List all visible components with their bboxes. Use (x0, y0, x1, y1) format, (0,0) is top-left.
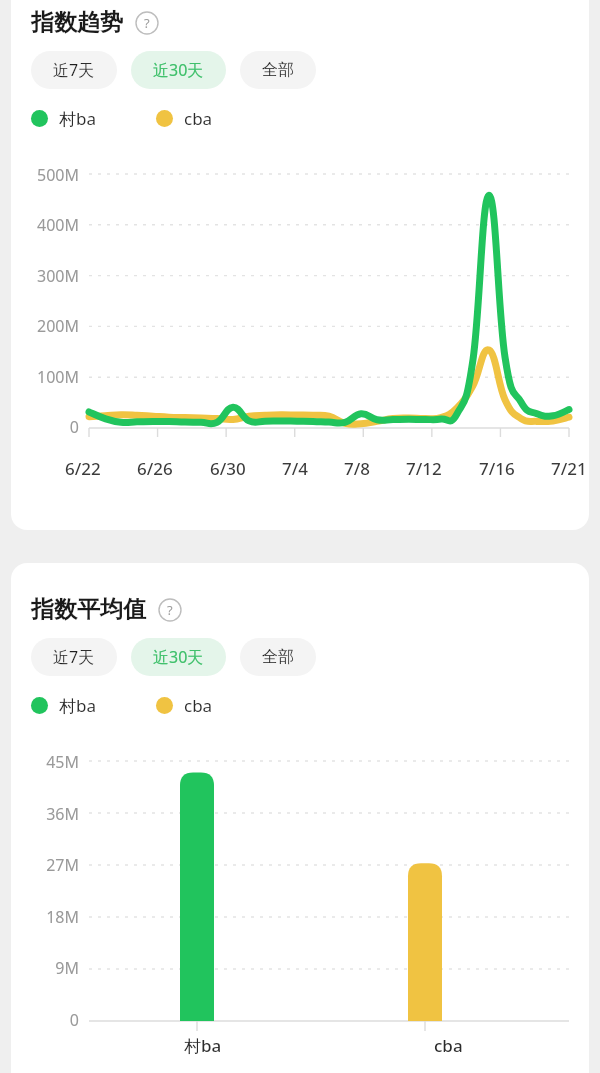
staticText: 7/8 (344, 457, 370, 480)
staticText: 村ba (184, 1034, 222, 1057)
staticText: 7/21 (551, 457, 587, 480)
button[interactable]: 全部 (240, 638, 316, 676)
staticText: 7/12 (406, 457, 442, 480)
staticText: 近7天 (53, 59, 95, 81)
button[interactable]: cba (156, 694, 213, 717)
staticText: 18M (11, 906, 79, 928)
staticText: 近30天 (153, 646, 204, 668)
button[interactable]: 近30天 (131, 51, 226, 89)
staticText: 200M (11, 315, 79, 337)
staticText: 400M (11, 214, 79, 236)
staticText: 45M (11, 751, 79, 773)
staticText: 7/16 (479, 457, 515, 480)
staticText: 6/22 (65, 457, 101, 480)
button[interactable]: 村ba (31, 694, 96, 717)
button[interactable]: cba (156, 107, 213, 130)
staticText: 村ba (59, 694, 96, 717)
button[interactable]: 村ba (31, 107, 96, 130)
staticText: 500M (11, 164, 79, 186)
staticText: 6/30 (210, 457, 246, 480)
staticText: 36M (11, 803, 79, 825)
button[interactable]: 近30天 (131, 638, 226, 676)
staticText: cba (184, 694, 213, 717)
staticText: 近7天 (53, 646, 95, 668)
staticText: ? (167, 601, 173, 619)
button[interactable]: 近7天 (31, 51, 117, 89)
staticText: 0 (11, 416, 79, 438)
staticText: 指数趋势 (31, 8, 123, 37)
staticText: cba (434, 1034, 463, 1057)
staticText: 300M (11, 265, 79, 287)
staticText: ? (144, 14, 150, 32)
button[interactable]: Help (158, 598, 182, 622)
staticText: 7/4 (282, 457, 308, 480)
staticText: 全部 (262, 647, 294, 667)
staticText: 9M (11, 957, 79, 979)
staticText: 100M (11, 366, 79, 388)
staticText: 近30天 (153, 59, 204, 81)
staticText: 全部 (262, 60, 294, 80)
button[interactable]: 全部 (240, 51, 316, 89)
staticText: 27M (11, 854, 79, 876)
button[interactable]: 近7天 (31, 638, 117, 676)
staticText: cba (184, 107, 213, 130)
staticText: 村ba (59, 107, 96, 130)
button[interactable]: Help (135, 11, 159, 35)
staticText: 6/26 (137, 457, 173, 480)
staticText: 指数平均值 (31, 595, 146, 624)
staticText: 0 (11, 1009, 79, 1031)
